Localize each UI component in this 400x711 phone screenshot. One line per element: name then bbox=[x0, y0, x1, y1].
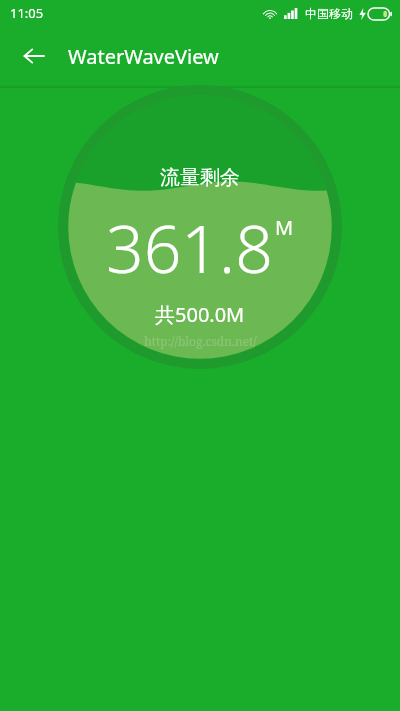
staticText: 流量剩余 bbox=[160, 165, 240, 190]
staticText: 11:05 bbox=[10, 4, 44, 22]
staticText: 361.8 bbox=[106, 202, 273, 292]
button[interactable]: Back bbox=[12, 34, 56, 78]
staticText: WaterWaveView bbox=[68, 43, 219, 70]
staticText: 共500.0M bbox=[155, 301, 245, 328]
staticText: 中国移动 bbox=[305, 6, 353, 21]
button[interactable]: Data usage water wave bbox=[58, 85, 342, 369]
staticText: M bbox=[275, 214, 294, 241]
staticText: http://blog.csdn.net/ bbox=[144, 333, 257, 349]
